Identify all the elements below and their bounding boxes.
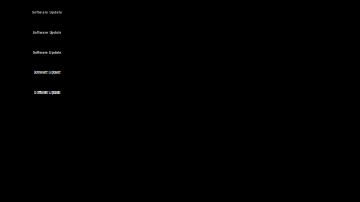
staticText: Software Update (32, 11, 62, 14)
staticText: Software Update (33, 30, 61, 34)
staticText: Software Update (33, 50, 61, 55)
staticText: Software Update (34, 90, 60, 95)
staticText: Software Update (33, 70, 60, 75)
